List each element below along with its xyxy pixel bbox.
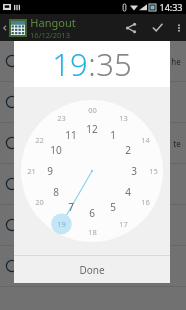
staticText: 8	[53, 185, 59, 199]
staticText: 5	[110, 200, 116, 214]
staticText: 20	[35, 197, 44, 207]
staticText: he	[171, 56, 181, 67]
staticText: 16/12/2013	[30, 30, 70, 40]
staticText: 16	[141, 197, 150, 207]
staticText: 9	[47, 164, 53, 178]
staticText: 12	[86, 122, 98, 136]
staticText: 00	[88, 105, 97, 115]
staticText: 13	[119, 113, 128, 123]
staticText: 17	[119, 219, 128, 229]
staticText: 19	[57, 219, 66, 229]
button[interactable]: Done	[14, 256, 170, 283]
staticText: te	[173, 138, 181, 149]
button[interactable]: More options	[171, 14, 186, 41]
staticText: 18	[88, 227, 97, 237]
staticText: 7	[68, 200, 74, 214]
staticText: 21	[27, 166, 36, 176]
staticText: 14:33	[159, 1, 183, 13]
staticText: :	[88, 43, 96, 85]
staticText: 2	[125, 143, 131, 157]
staticText: 22	[35, 135, 44, 145]
staticText: 14	[141, 135, 150, 145]
button[interactable]: 19	[52, 43, 88, 85]
staticText: 23	[57, 113, 66, 123]
button[interactable]: Confirm	[144, 14, 171, 41]
staticText: 35	[96, 43, 132, 85]
button[interactable]: Share	[117, 14, 144, 41]
staticText: 10	[50, 143, 62, 157]
staticText: 6	[89, 206, 95, 220]
staticText: 19	[52, 43, 88, 85]
staticText: 3	[131, 164, 137, 178]
button[interactable]: 35	[96, 43, 132, 85]
staticText: 11	[65, 128, 77, 142]
button[interactable]: Back	[0, 14, 9, 41]
staticText: 4	[125, 185, 131, 199]
staticText: 1	[110, 128, 116, 142]
staticText: Done	[79, 263, 105, 277]
staticText: Hangout	[30, 15, 76, 30]
staticText: 15	[149, 166, 158, 176]
